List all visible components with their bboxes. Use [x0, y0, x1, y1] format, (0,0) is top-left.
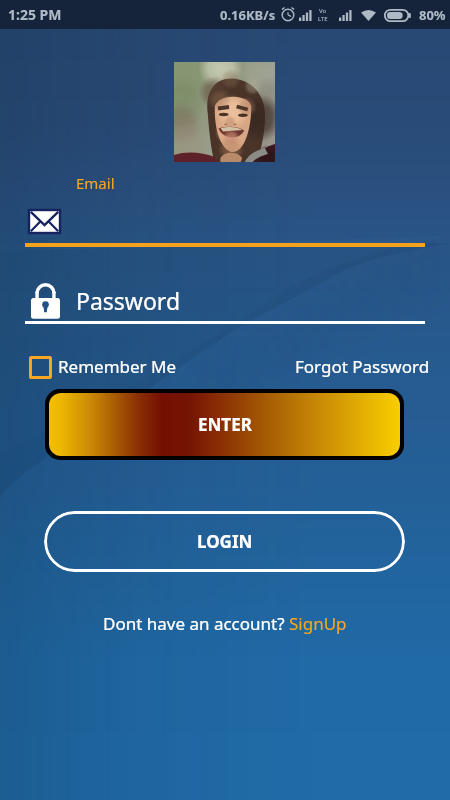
- button[interactable]: Forgot Password: [295, 355, 430, 378]
- button[interactable]: ENTER: [49, 393, 400, 456]
- staticText: Vo: [319, 7, 327, 15]
- staticText: 80%: [419, 6, 446, 24]
- staticText: Email: [76, 173, 115, 193]
- button[interactable]: Remember Me: [27, 354, 177, 379]
- staticText: ENTER: [198, 413, 252, 436]
- staticText: LTE: [318, 15, 328, 23]
- other: Email: [29, 210, 60, 233]
- button[interactable]: LOGIN: [44, 511, 405, 572]
- staticText: 0.16KB/s: [220, 6, 276, 24]
- staticText: LOGIN: [197, 530, 253, 553]
- other: Password: [31, 283, 60, 319]
- staticText: 1:25 PM: [8, 5, 62, 24]
- staticText: Dont have an account?: [103, 612, 289, 635]
- staticText: Remember Me: [58, 355, 177, 378]
- staticText: Password: [76, 285, 181, 316]
- button[interactable]: SignUp: [289, 612, 347, 635]
